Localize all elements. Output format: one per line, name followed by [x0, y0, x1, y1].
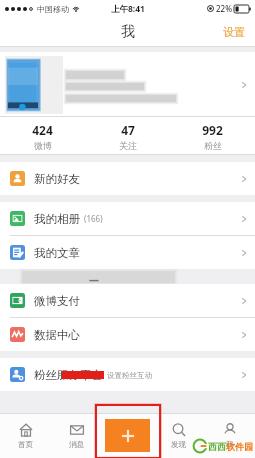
staticText: 新的好友: [34, 172, 80, 186]
button[interactable]: 我的相册: [0, 202, 255, 235]
staticText: (166): [84, 213, 103, 224]
button[interactable]: Compose: [105, 419, 150, 452]
staticText: 中国移动: [37, 4, 69, 14]
button[interactable]: 数据中心: [0, 318, 255, 351]
staticText: 设置: [223, 25, 245, 39]
staticText: 47: [121, 122, 135, 138]
staticText: 粉丝: [204, 140, 222, 151]
staticText: 西西: [208, 441, 226, 452]
staticText: 微博支付: [34, 294, 80, 308]
staticText: 微博: [34, 140, 52, 151]
button[interactable]: 消息: [51, 413, 102, 458]
staticText: 424: [32, 122, 53, 138]
staticText: 数据中心: [34, 328, 80, 342]
staticText: 发现: [171, 440, 186, 449]
staticText: 消息: [69, 440, 84, 449]
button[interactable]: 我的文章: [0, 236, 255, 269]
button[interactable]: 首页: [0, 413, 51, 458]
staticText: 粉丝服务平台: [34, 368, 103, 382]
button[interactable]: 我: [204, 413, 255, 458]
staticText: 关注: [119, 140, 137, 151]
staticText: 992: [202, 122, 223, 138]
staticText: 首页: [18, 440, 33, 449]
staticText: 设置粉丝互动: [107, 371, 152, 380]
staticText: 我: [226, 440, 234, 449]
button[interactable]: 微博支付: [0, 284, 255, 317]
button[interactable]: [0, 52, 255, 117]
button[interactable]: 设置: [213, 19, 255, 45]
button[interactable]: 发现: [153, 413, 204, 458]
staticText: 软件园: [226, 441, 253, 452]
button[interactable]: 47: [85, 122, 170, 151]
staticText: 22%: [216, 3, 232, 14]
button[interactable]: 424: [0, 122, 85, 151]
staticText: 我的相册: [34, 212, 80, 226]
staticText: 我: [121, 23, 135, 41]
button[interactable]: 992: [170, 122, 255, 151]
button[interactable]: 新的好友: [0, 162, 255, 195]
staticText: 我的文章: [34, 246, 80, 260]
button[interactable]: 粉丝服务平台: [0, 358, 255, 391]
staticText: 上午8:41: [111, 3, 145, 15]
